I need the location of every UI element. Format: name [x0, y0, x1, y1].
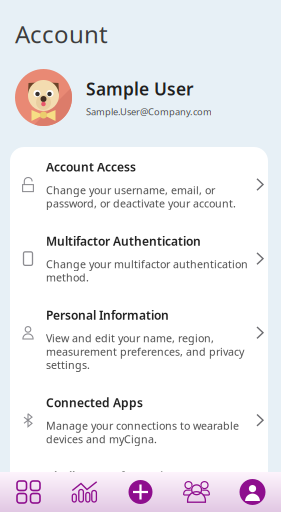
button[interactable]: Trends — [56, 472, 112, 512]
staticText: Account Access — [46, 159, 136, 175]
staticText: Change your multifactor authentication — [46, 257, 248, 271]
button[interactable]: Add — [112, 472, 168, 512]
staticText: Manage your connections to wearable — [46, 419, 239, 433]
button[interactable]: Challenge Information — [10, 457, 268, 512]
staticText: Challenge Information — [46, 469, 178, 485]
button[interactable]: Personal Information — [10, 295, 268, 383]
staticText: View and edit your name, region, — [46, 331, 214, 345]
button[interactable]: Multifactor Authentication — [10, 221, 268, 295]
staticText: Change your username, email, or — [46, 183, 215, 197]
button[interactable]: Connected Apps — [10, 383, 268, 457]
staticText: Manage your challenge display name and — [46, 493, 237, 512]
button[interactable]: Community — [168, 472, 224, 512]
staticText: Sample.User@Company.com — [86, 105, 212, 118]
staticText: password, or deactivate your account. — [46, 196, 236, 210]
staticText: method. — [46, 270, 89, 285]
staticText: Multifactor Authentication — [46, 233, 201, 249]
button[interactable]: Account Access — [10, 147, 268, 221]
button[interactable]: Dashboard — [0, 472, 56, 512]
staticText: devices and myCigna. — [46, 432, 157, 446]
staticText: measurement preferences, and privacy — [46, 344, 244, 359]
staticText: Personal Information — [46, 307, 169, 323]
staticText: settings. — [46, 358, 90, 372]
staticText: Account — [15, 18, 108, 50]
staticText: Sample User — [86, 77, 194, 100]
button[interactable]: Profile — [224, 472, 280, 512]
staticText: Connected Apps — [46, 395, 143, 411]
